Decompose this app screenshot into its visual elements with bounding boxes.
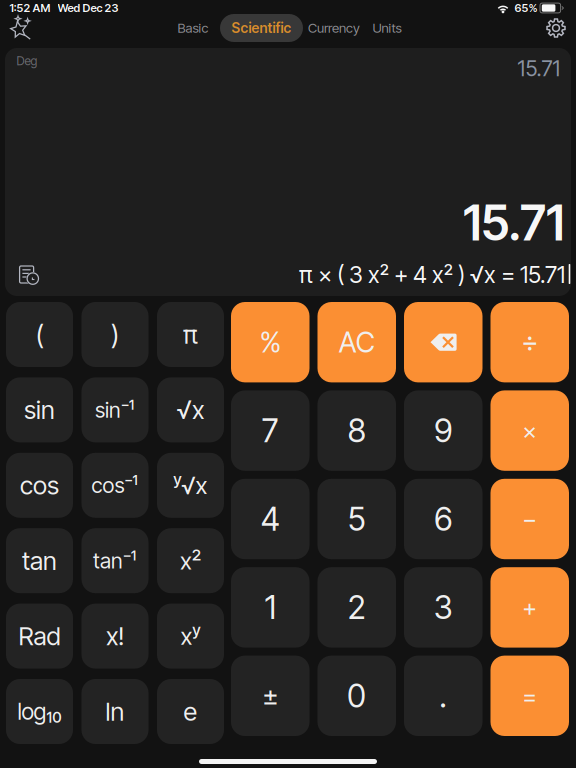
staticText: sin — [24, 395, 55, 425]
button[interactable]: Backspace — [404, 302, 482, 382]
button[interactable]: π — [157, 302, 224, 367]
staticText: AC — [339, 325, 375, 359]
button[interactable]: tan⁻¹ — [81, 528, 148, 593]
staticText: 9 — [434, 411, 452, 450]
button[interactable]: 7 — [231, 390, 309, 471]
staticText: tan — [22, 545, 57, 576]
staticText: 3 — [434, 588, 453, 627]
staticText: 5 — [348, 500, 366, 538]
staticText: x² — [180, 546, 201, 575]
staticText: 15.71 — [463, 194, 564, 252]
button[interactable]: Basic — [167, 14, 219, 42]
button[interactable]: sin⁻¹ — [81, 377, 148, 442]
button[interactable]: log₁₀ — [6, 679, 73, 744]
button[interactable]: ± — [231, 656, 309, 736]
staticText: 0 — [347, 676, 366, 715]
button[interactable]: 6 — [404, 479, 482, 559]
staticText: 1:52 AM — [9, 1, 50, 15]
button[interactable]: ( — [6, 302, 73, 367]
staticText: √x — [177, 395, 204, 425]
staticText: ʸ√x — [173, 471, 207, 500]
staticText: Units — [372, 20, 401, 36]
staticText: Wed Dec 23 — [57, 1, 118, 15]
staticText: 8 — [348, 411, 366, 450]
button[interactable]: Units — [364, 14, 410, 42]
button[interactable]: xʸ — [157, 604, 224, 669]
button[interactable]: cos — [6, 453, 73, 518]
button[interactable]: ) — [81, 302, 148, 367]
staticText: Scientific — [231, 19, 291, 36]
button[interactable]: Magic — [1, 11, 39, 45]
button[interactable]: = — [490, 656, 569, 736]
button[interactable]: ln — [81, 679, 148, 744]
staticText: 65% — [514, 1, 537, 15]
staticText: = — [522, 681, 537, 710]
button[interactable]: × — [490, 390, 569, 471]
button[interactable]: √x — [157, 377, 224, 442]
button[interactable]: − — [490, 479, 569, 559]
staticText: − — [522, 504, 537, 533]
staticText: Currency — [308, 20, 360, 36]
button[interactable]: AC — [317, 302, 396, 382]
staticText: cos — [20, 470, 59, 501]
staticText: 15.71 — [517, 56, 560, 81]
staticText: sin⁻¹ — [95, 397, 135, 423]
button[interactable]: History — [16, 262, 42, 288]
staticText: 7 — [262, 411, 279, 450]
button[interactable]: ÷ — [490, 302, 569, 382]
staticText: e — [183, 696, 197, 727]
staticText: x! — [106, 621, 124, 651]
button[interactable]: Settings — [537, 11, 575, 45]
staticText: . — [439, 676, 447, 715]
staticText: cos⁻¹ — [91, 472, 138, 498]
button[interactable]: Currency — [303, 14, 365, 42]
button[interactable]: 5 — [317, 479, 396, 559]
button[interactable]: . — [404, 656, 482, 736]
staticText: ln — [105, 696, 124, 727]
button[interactable]: 9 — [404, 390, 482, 471]
button[interactable]: tan — [6, 528, 73, 593]
staticText: ( — [35, 318, 43, 351]
button[interactable]: 8 — [317, 390, 396, 471]
button[interactable]: 4 — [231, 479, 309, 559]
staticText: 2 — [348, 588, 366, 627]
staticText: tan⁻¹ — [93, 548, 137, 574]
staticText: 6 — [434, 500, 452, 538]
button[interactable]: cos⁻¹ — [81, 453, 148, 518]
staticText: 4 — [261, 500, 280, 538]
staticText: × — [522, 416, 537, 445]
staticText: π × ( 3 x² + 4 x² ) √x = 15.71 — [299, 260, 565, 289]
button[interactable]: 2 — [317, 567, 396, 648]
staticText: Deg — [16, 54, 37, 68]
button[interactable]: Rad — [6, 604, 73, 669]
staticText: ) — [111, 318, 119, 351]
staticText: % — [260, 325, 281, 359]
staticText: ± — [262, 680, 278, 712]
staticText: log₁₀ — [17, 698, 61, 725]
staticText: Basic — [177, 20, 208, 36]
button[interactable]: 3 — [404, 567, 482, 648]
button[interactable]: 1 — [231, 567, 309, 648]
button[interactable]: + — [490, 567, 569, 648]
button[interactable]: x! — [81, 604, 148, 669]
button[interactable]: e — [157, 679, 224, 744]
staticText: xʸ — [180, 622, 200, 651]
staticText: + — [522, 593, 537, 622]
staticText: ÷ — [521, 325, 538, 359]
button[interactable]: Scientific — [220, 14, 303, 42]
button[interactable]: x² — [157, 528, 224, 593]
button[interactable]: 0 — [317, 656, 396, 736]
staticText: Rad — [18, 621, 60, 651]
button[interactable]: sin — [6, 377, 73, 442]
button[interactable]: % — [231, 302, 309, 382]
staticText: π — [183, 319, 198, 350]
button[interactable]: ʸ√x — [157, 453, 224, 518]
staticText: 1 — [265, 588, 276, 627]
